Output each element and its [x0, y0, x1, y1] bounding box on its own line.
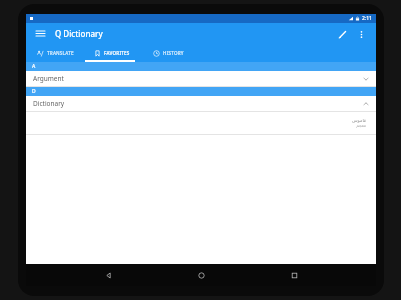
staticText: TRANSLATE	[47, 50, 74, 56]
staticText: A	[32, 63, 36, 70]
button[interactable]: Dictionary	[26, 96, 376, 111]
staticText: Q Dictionary	[55, 28, 103, 39]
button[interactable]: FAVORITES	[84, 44, 140, 62]
staticText: Dictionary	[33, 99, 65, 108]
staticText: Argument	[33, 74, 64, 83]
button[interactable]: HISTORY	[140, 44, 196, 62]
button[interactable]: Open navigation drawer	[33, 26, 48, 41]
button[interactable]: Home	[190, 264, 212, 286]
button[interactable]: Recent apps	[283, 264, 305, 286]
staticText: HISTORY	[163, 50, 184, 56]
button[interactable]: Edit	[334, 26, 350, 42]
button[interactable]: A	[26, 62, 376, 71]
button[interactable]: D	[26, 87, 376, 96]
staticText: FAVORITES	[104, 50, 130, 56]
staticText: D	[32, 88, 36, 95]
staticText: قاموس	[351, 118, 366, 123]
staticText: 2:11	[362, 15, 372, 22]
button[interactable]: TRANSLATE	[26, 44, 84, 62]
button[interactable]: Back	[97, 264, 119, 286]
button[interactable]: Argument	[26, 71, 376, 86]
staticText: معجم	[356, 123, 366, 128]
button[interactable]: More options	[353, 26, 369, 42]
